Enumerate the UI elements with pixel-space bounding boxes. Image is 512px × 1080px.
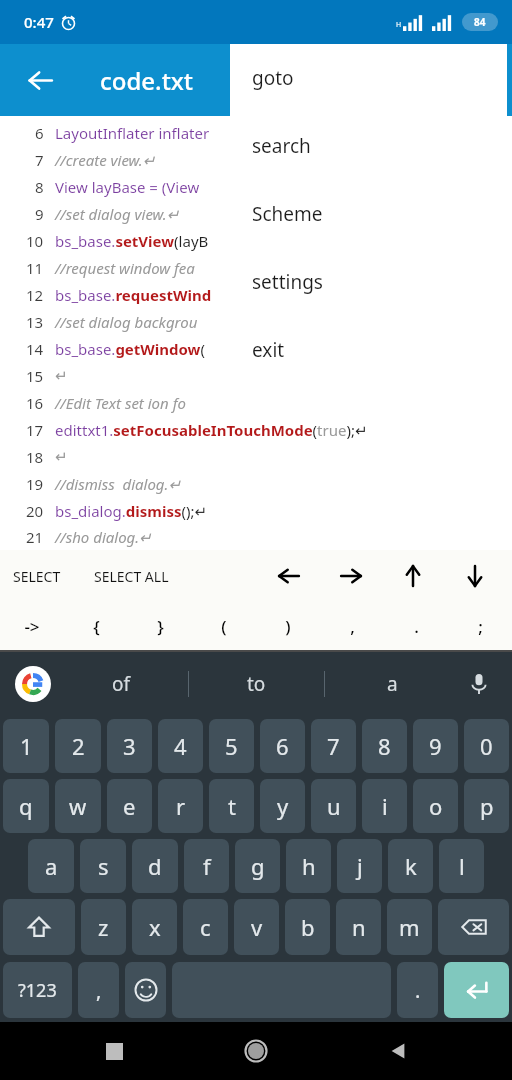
button[interactable]: ?123 [3, 962, 72, 1018]
button[interactable]: settings [230, 248, 507, 316]
button[interactable]: 3 [107, 719, 152, 773]
button[interactable]: s [80, 839, 126, 893]
button[interactable]: h [286, 839, 331, 893]
button[interactable]: a [325, 652, 460, 716]
staticText: h [302, 851, 316, 881]
button[interactable]: v [234, 899, 279, 955]
button[interactable]: goto [230, 44, 507, 112]
staticText: 0:47 [24, 12, 54, 32]
button[interactable]: j [337, 839, 382, 893]
button[interactable]: k [388, 839, 433, 893]
button[interactable]: Voice input [460, 665, 498, 703]
button[interactable]: Recent apps [86, 1023, 142, 1079]
staticText: SELECT [13, 567, 61, 586]
button[interactable]: b [285, 899, 330, 955]
staticText: , [96, 977, 102, 1004]
button[interactable]: Move left [258, 550, 320, 602]
button[interactable]: . [384, 602, 448, 650]
button[interactable]: ) [256, 602, 320, 650]
button[interactable]: y [260, 779, 305, 833]
button[interactable]: Emoji [125, 962, 166, 1018]
button[interactable]: 6 [260, 719, 305, 773]
staticText: x [149, 912, 161, 942]
button[interactable]: , [320, 602, 384, 650]
button[interactable]: d [132, 839, 178, 893]
button[interactable]: . [397, 962, 438, 1018]
staticText: w [69, 791, 87, 821]
button[interactable]: x [132, 899, 177, 955]
button[interactable]: ( [192, 602, 256, 650]
button[interactable]: p [464, 779, 509, 833]
staticText: 7 [327, 731, 340, 761]
button[interactable]: Google [12, 663, 54, 705]
staticText: r [176, 791, 186, 821]
button[interactable]: c [183, 899, 228, 955]
button[interactable]: } [128, 602, 192, 650]
button[interactable]: to [189, 652, 324, 716]
button[interactable]: 1 [3, 719, 49, 773]
button[interactable]: t [209, 779, 254, 833]
button[interactable]: SELECT ALL [94, 550, 169, 602]
staticText: 8 [35, 177, 44, 197]
button[interactable]: Enter [444, 962, 509, 1018]
button[interactable]: i [362, 779, 407, 833]
button[interactable]: r [158, 779, 203, 833]
button[interactable]: u [311, 779, 356, 833]
button[interactable]: Move right [320, 550, 382, 602]
staticText: t [228, 791, 236, 821]
button[interactable]: { [64, 602, 128, 650]
button[interactable]: m [387, 899, 432, 955]
button[interactable]: , [78, 962, 119, 1018]
button[interactable]: g [235, 839, 280, 893]
button[interactable]: n [336, 899, 381, 955]
staticText: s [98, 851, 109, 881]
button[interactable]: 0 [464, 719, 509, 773]
button[interactable]: search [230, 112, 507, 180]
staticText: k [405, 851, 417, 881]
button[interactable]: a [28, 839, 74, 893]
button[interactable]: Back [14, 54, 66, 106]
staticText: //create view.↵ [55, 150, 156, 170]
button[interactable]: Move down [444, 550, 506, 602]
button[interactable]: q [3, 779, 49, 833]
button[interactable]: f [184, 839, 229, 893]
staticText: l [459, 851, 465, 881]
button[interactable]: w [55, 779, 101, 833]
button[interactable]: ; [448, 602, 512, 650]
staticText: bs_base.getWindow( [55, 339, 205, 359]
button[interactable]: e [107, 779, 152, 833]
button[interactable]: 7 [311, 719, 356, 773]
button[interactable]: exit [230, 316, 507, 384]
button[interactable]: 2 [55, 719, 101, 773]
button[interactable]: Home [228, 1023, 284, 1079]
staticText: g [251, 851, 265, 881]
button[interactable]: of [54, 652, 188, 716]
staticText: bs_base.requestWind [55, 285, 212, 305]
staticText: edittxt1.setFocusableInTouchMode(true);↵ [55, 420, 368, 440]
button[interactable]: Backspace [438, 899, 509, 955]
button[interactable]: l [439, 839, 484, 893]
button[interactable]: o [413, 779, 458, 833]
staticText: View layBase = (View [55, 177, 200, 197]
staticText: -> [24, 615, 40, 638]
button[interactable]: 5 [209, 719, 254, 773]
staticText: 7 [35, 150, 44, 170]
button[interactable]: Shift [3, 899, 75, 955]
button[interactable]: 8 [362, 719, 407, 773]
staticText: b [301, 912, 315, 942]
staticText: c [200, 912, 211, 942]
button[interactable]: -> [0, 602, 64, 650]
staticText: bs_dialog.dismiss();↵ [55, 501, 208, 521]
staticText: ?123 [18, 978, 57, 1003]
button[interactable]: Move up [382, 550, 444, 602]
staticText: 8 [378, 731, 391, 761]
button[interactable]: SELECT [13, 550, 61, 602]
button[interactable]: z [81, 899, 126, 955]
button[interactable]: 9 [413, 719, 458, 773]
staticText: //set dialog backgrou [55, 312, 198, 332]
button[interactable]: Scheme [230, 180, 507, 248]
button[interactable]: 4 [158, 719, 203, 773]
staticText: 9 [429, 731, 442, 761]
button[interactable]: Back [370, 1023, 426, 1079]
